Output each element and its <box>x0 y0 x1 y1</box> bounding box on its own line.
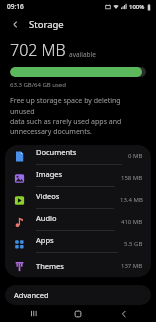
staticText: 0 MB <box>128 152 143 160</box>
staticText: 158 MB <box>121 174 143 182</box>
staticText: 13.4 MB <box>120 196 143 204</box>
staticText: 137 MB <box>121 262 143 270</box>
staticText: Videos <box>36 191 60 201</box>
staticText: 410 MB <box>121 218 143 226</box>
staticText: Advanced <box>14 290 49 300</box>
button[interactable]: Recents <box>20 305 46 322</box>
staticText: 5.5 GB <box>124 240 143 248</box>
staticText: 702 MB <box>10 39 66 61</box>
staticText: available <box>69 50 96 59</box>
button[interactable]: Back <box>7 16 23 32</box>
staticText: Images <box>36 169 63 179</box>
staticText: Documents <box>36 147 77 157</box>
button[interactable]: Back <box>111 305 137 322</box>
staticText: Audio <box>36 213 57 223</box>
staticText: 100% <box>129 3 145 11</box>
staticText: Free up storage space by deleting unused… <box>10 96 146 136</box>
button[interactable]: Images <box>5 167 151 189</box>
staticText: Storage <box>29 18 64 31</box>
button[interactable]: Apps <box>5 233 151 255</box>
staticText: Themes <box>36 261 64 271</box>
staticText: 63.3 GB/64 GB used <box>10 81 66 89</box>
button[interactable]: Videos <box>5 189 151 211</box>
button[interactable]: Documents <box>5 145 151 167</box>
button[interactable]: Advanced <box>5 285 151 305</box>
staticText: 09:16 <box>7 2 24 11</box>
button[interactable]: Home <box>65 305 91 322</box>
staticText: Apps <box>36 235 54 245</box>
button[interactable]: Audio <box>5 211 151 233</box>
button[interactable]: Themes <box>5 255 151 277</box>
